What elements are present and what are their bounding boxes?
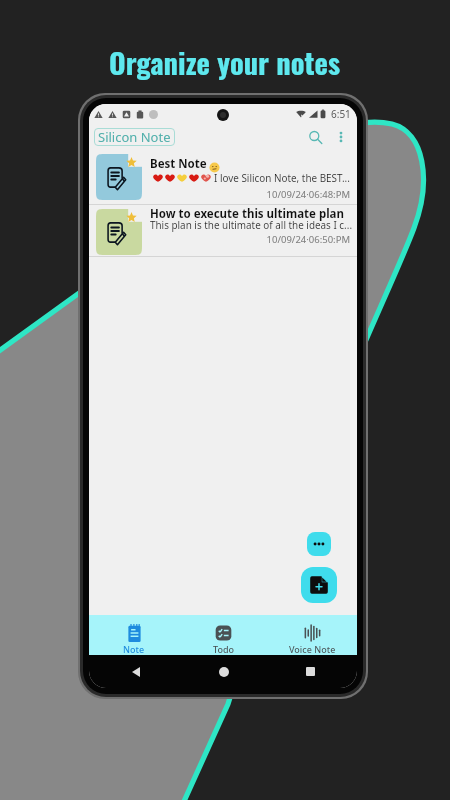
button[interactable]: More options — [330, 126, 352, 148]
button[interactable]: More options — [307, 532, 331, 556]
button[interactable]: Search — [303, 125, 327, 149]
staticText: 10/09/24·06:50:PM — [89, 233, 350, 246]
staticText: Silicon Note — [98, 128, 171, 146]
staticText: Todo — [213, 643, 235, 655]
staticText: How to execute this ultimate plan — [150, 206, 344, 222]
button[interactable]: How to execute this ultimate plan — [89, 205, 357, 257]
button[interactable]: Note — [89, 615, 179, 655]
staticText: I love Silicon Note, the BEST... — [214, 171, 350, 184]
button[interactable]: Voice Note — [268, 615, 357, 655]
staticText: Note — [123, 643, 145, 655]
staticText: Voice Note — [289, 643, 336, 655]
button[interactable]: Best Note — [89, 150, 357, 205]
staticText: Organize your notes — [109, 41, 341, 83]
button[interactable]: Todo — [179, 615, 268, 655]
staticText: This plan is the ultimate of all the ide… — [150, 218, 353, 231]
staticText: Best Note — [150, 156, 207, 172]
staticText: 10/09/24·06:48:PM — [89, 188, 350, 201]
staticText: 6:51 — [331, 107, 351, 121]
button[interactable]: New note — [301, 567, 337, 603]
